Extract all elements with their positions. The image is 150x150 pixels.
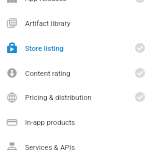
button[interactable]: Content rating: [0, 59, 150, 84]
other: Completed: [135, 43, 145, 53]
other: Completed: [135, 92, 145, 102]
staticText: Services & APIs: [25, 143, 76, 150]
button[interactable]: App releases: [0, 0, 150, 9]
staticText: Pricing & distribution: [25, 93, 92, 101]
staticText: Content rating: [25, 69, 71, 77]
staticText: App releases: [25, 0, 67, 2]
staticText: In-app products: [25, 118, 76, 126]
button[interactable]: Services & APIs: [0, 133, 150, 150]
button[interactable]: Artifact library: [0, 9, 150, 34]
other: Services & APIs: [7, 142, 17, 150]
staticText: Artifact library: [25, 19, 71, 27]
other: Pricing & distribution: [7, 92, 17, 102]
button[interactable]: Store listing: [0, 34, 150, 59]
other: App releases: [7, 0, 17, 3]
other: Artifact library: [7, 18, 17, 28]
other: Completed: [135, 0, 145, 3]
staticText: Store listing: [25, 44, 64, 52]
other: In-app products: [7, 117, 17, 127]
other: Content rating: [7, 68, 17, 78]
button[interactable]: In-app products: [0, 108, 150, 133]
other: Store listing: [7, 43, 17, 53]
other: Completed: [135, 68, 145, 78]
button[interactable]: Pricing & distribution: [0, 83, 150, 108]
